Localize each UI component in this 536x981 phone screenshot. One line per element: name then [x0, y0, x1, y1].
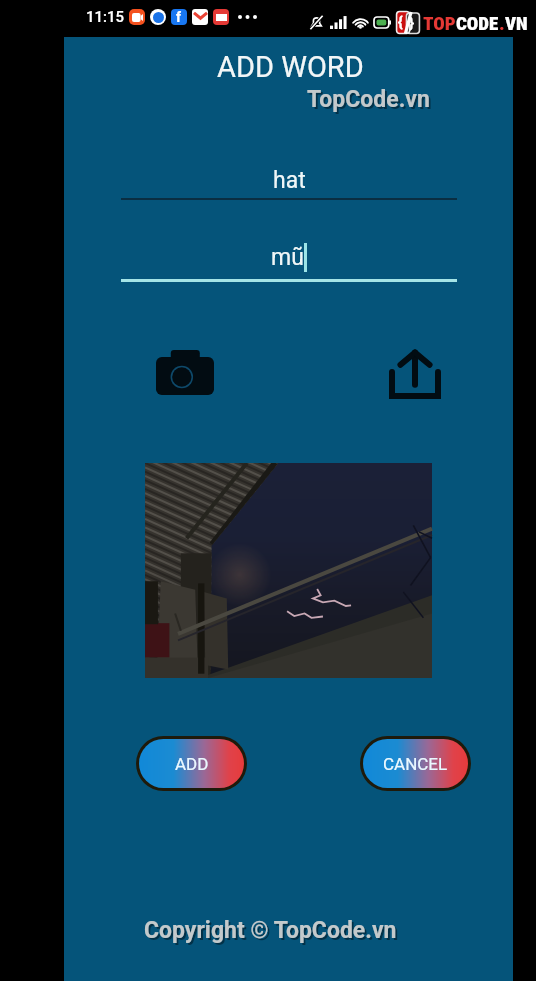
staticText: TopCode.vn: [307, 86, 430, 113]
staticText: TopCode.vn: [309, 88, 432, 115]
staticText: hat: [273, 167, 306, 194]
staticText: ADD WORD: [217, 50, 364, 84]
staticText: .: [499, 12, 505, 34]
button[interactable]: CANCEL: [363, 739, 468, 788]
staticText: 11:15: [86, 8, 125, 26]
button[interactable]: ADD: [139, 739, 244, 788]
staticText: {: [398, 13, 403, 31]
staticText: CANCEL: [383, 754, 448, 774]
staticText: f: [176, 9, 182, 25]
staticText: VN: [505, 12, 528, 34]
button[interactable]: Upload image: [389, 348, 441, 399]
staticText: Copyright © TopCode.vn: [144, 917, 397, 944]
staticText: }: [409, 14, 414, 32]
staticText: ADD: [175, 754, 209, 774]
button[interactable]: Take photo: [156, 350, 214, 395]
staticText: TOP: [423, 12, 456, 34]
staticText: mũ: [271, 244, 304, 271]
staticText: Copyright © TopCode.vn: [146, 919, 399, 946]
staticText: CODE: [456, 12, 499, 34]
